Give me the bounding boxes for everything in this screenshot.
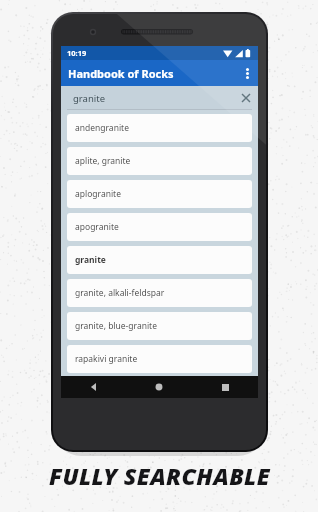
button[interactable]: aplogranite	[67, 180, 252, 208]
button[interactable]: granite, blue-granite	[67, 312, 252, 340]
button[interactable]: granite, alkali-feldspar	[67, 279, 252, 307]
button[interactable]: aplite, granite	[67, 147, 252, 175]
button[interactable]: More options	[236, 60, 258, 86]
button[interactable]: Home	[126, 376, 192, 398]
button[interactable]: Back	[61, 376, 126, 398]
staticText: FULLY SEARCHABLE	[49, 460, 270, 491]
staticText: granite	[73, 92, 106, 105]
button[interactable]: Recent apps	[192, 376, 258, 398]
button[interactable]: apogranite	[67, 213, 252, 241]
button[interactable]: Clear search	[234, 86, 258, 110]
staticText: apogranite	[75, 221, 119, 233]
button[interactable]: andengranite	[67, 114, 252, 142]
staticText: 10:19	[67, 48, 87, 58]
button[interactable]: granite	[61, 86, 258, 110]
staticText: granite, alkali-feldspar	[75, 287, 165, 299]
staticText: granite	[75, 254, 106, 266]
staticText: aplite, granite	[75, 155, 131, 167]
staticText: andengranite	[75, 122, 129, 134]
staticText: granite, blue-granite	[75, 320, 157, 332]
button[interactable]: granite	[67, 246, 252, 274]
staticText: Handbook of Rocks	[68, 66, 174, 81]
staticText: rapakivi granite	[75, 353, 138, 365]
button[interactable]: rapakivi granite	[67, 345, 252, 373]
staticText: aplogranite	[75, 188, 121, 200]
